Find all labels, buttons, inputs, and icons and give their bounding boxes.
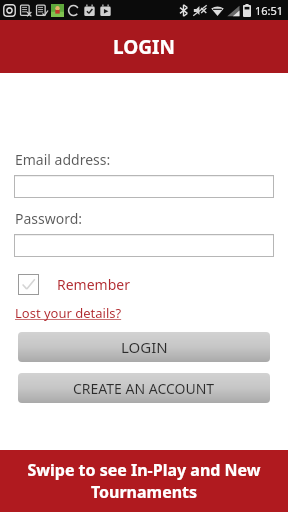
- button[interactable]: Lost your details?: [15, 304, 122, 322]
- staticText: Remember: [57, 275, 130, 294]
- staticText: CREATE AN ACCOUNT: [73, 379, 215, 398]
- button[interactable]: [14, 175, 274, 198]
- staticText: 16:51: [255, 3, 284, 18]
- button[interactable]: [14, 234, 274, 257]
- staticText: LOGIN: [121, 337, 168, 357]
- button[interactable]: Swipe to see In-Play and New Tournaments: [0, 450, 288, 512]
- staticText: Password:: [15, 209, 83, 228]
- staticText: Swipe to see In-Play and New Tournaments: [14, 459, 274, 503]
- button[interactable]: Remember: [18, 274, 130, 295]
- staticText: LOGIN: [113, 34, 175, 60]
- button[interactable]: CREATE AN ACCOUNT: [18, 373, 270, 403]
- button[interactable]: LOGIN: [18, 332, 270, 362]
- staticText: Email address:: [15, 150, 111, 169]
- staticText: Lost your details?: [15, 304, 122, 322]
